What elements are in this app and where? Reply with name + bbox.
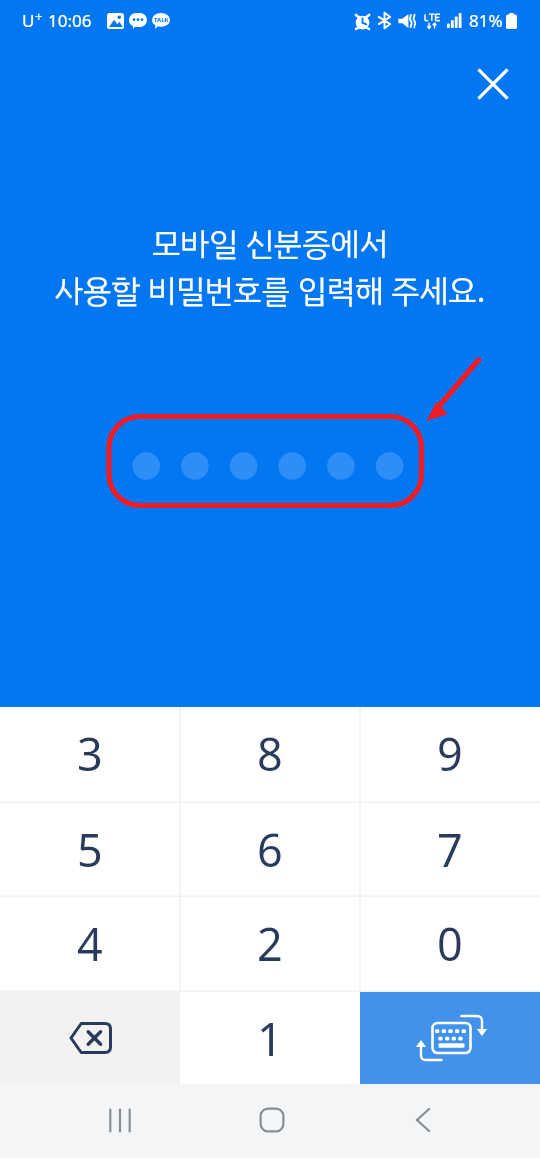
- button[interactable]: 1: [180, 992, 360, 1084]
- button[interactable]: 0: [360, 897, 540, 992]
- button[interactable]: Backspace: [0, 992, 180, 1084]
- staticText: 10:06: [48, 9, 92, 32]
- staticText: 모바일 신분증에서 사용할 비밀번호를 입력해 주세요.: [0, 220, 540, 315]
- staticText: 6: [257, 819, 283, 880]
- button[interactable]: 5: [0, 803, 180, 897]
- button[interactable]: 8: [180, 707, 360, 803]
- staticText: 2: [257, 913, 283, 974]
- button[interactable]: 7: [360, 803, 540, 897]
- button[interactable]: 9: [360, 707, 540, 803]
- staticText: 3: [77, 723, 103, 784]
- button[interactable]: Home: [242, 1090, 302, 1150]
- button[interactable]: Back: [393, 1090, 453, 1150]
- staticText: 9: [437, 723, 463, 784]
- button[interactable]: 2: [180, 897, 360, 992]
- button[interactable]: Recents: [90, 1090, 150, 1150]
- button[interactable]: 4: [0, 897, 180, 992]
- staticText: 4: [77, 913, 103, 974]
- staticText: 7: [437, 819, 463, 880]
- staticText: 81%: [469, 9, 503, 32]
- staticText: 5: [77, 819, 103, 880]
- button[interactable]: Close: [465, 56, 521, 112]
- button[interactable]: 3: [0, 707, 180, 803]
- staticText: 0: [437, 913, 463, 974]
- staticText: 1: [257, 1008, 283, 1069]
- button[interactable]: Switch keyboard: [360, 992, 540, 1084]
- button[interactable]: 6: [180, 803, 360, 897]
- staticText: TALK: [154, 16, 169, 24]
- staticText: U: [22, 9, 35, 32]
- staticText: +: [35, 7, 43, 25]
- staticText: 8: [257, 723, 283, 784]
